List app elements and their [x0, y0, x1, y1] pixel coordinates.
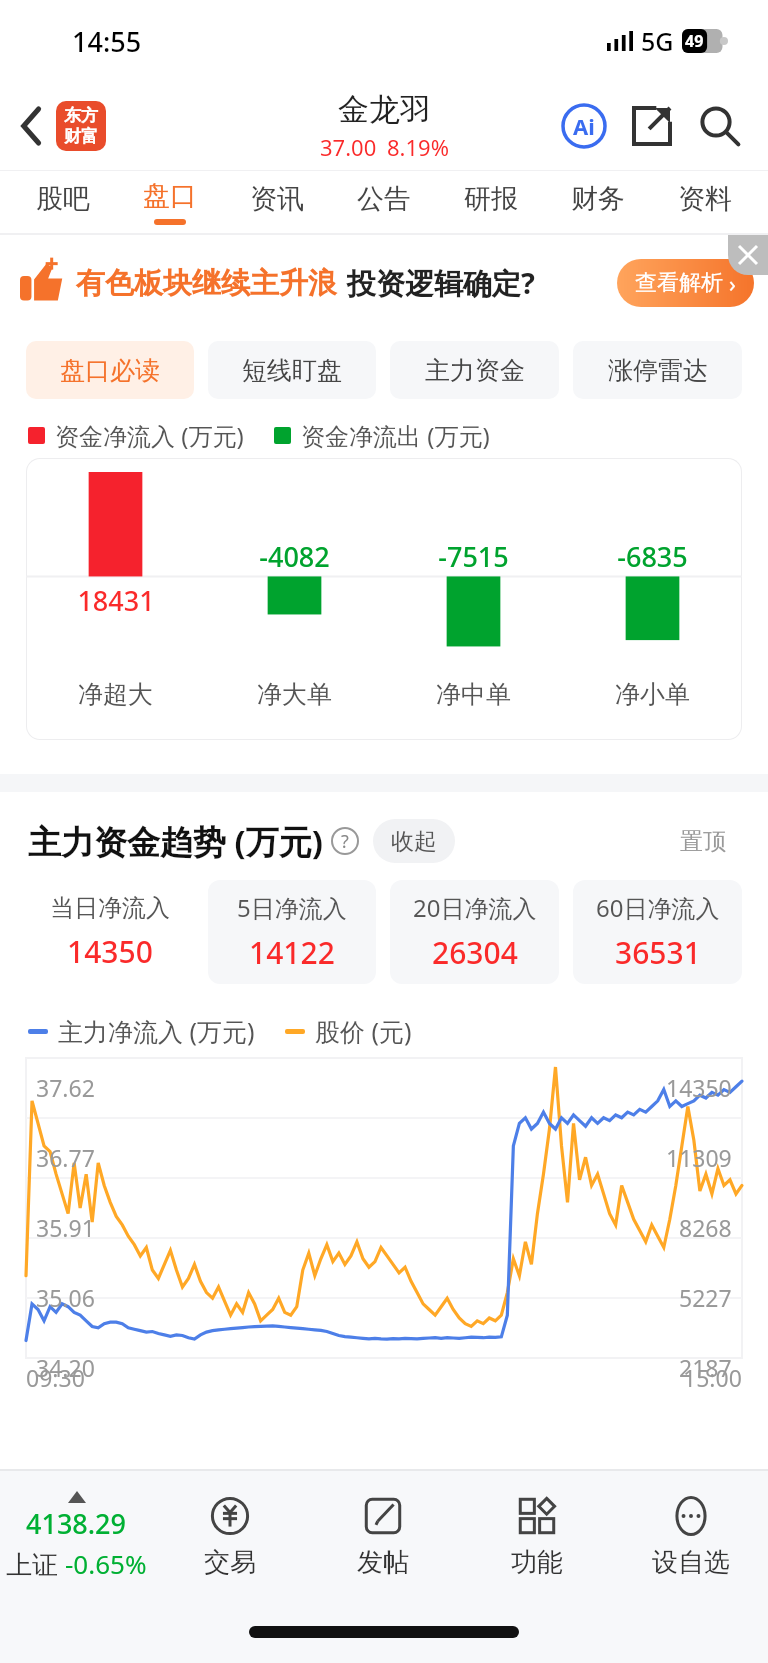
button[interactable]: 收起 — [391, 819, 437, 863]
staticText: 投资逻辑确定? — [347, 263, 535, 303]
staticText: -6835 — [617, 538, 688, 575]
staticText: 公告 — [357, 182, 411, 216]
staticText: 35.91 — [36, 1212, 95, 1243]
staticText: 财富 — [64, 126, 98, 147]
button[interactable]: 发帖 — [306, 1471, 460, 1601]
button[interactable]: 主力资金 — [390, 341, 559, 399]
staticText: 14350 — [666, 1072, 732, 1103]
staticText: 收起 — [391, 827, 437, 856]
staticText: 60日净流入 — [596, 891, 720, 924]
button[interactable]: 盘口必读 — [26, 341, 194, 399]
staticText: 资料 — [678, 182, 732, 216]
staticText: 上证 — [6, 1546, 65, 1582]
button[interactable]: 研报 — [437, 171, 544, 233]
staticText: › — [729, 268, 736, 298]
staticText: 26304 — [432, 932, 518, 973]
button[interactable]: 功能 — [460, 1471, 614, 1601]
button[interactable]: Search — [692, 98, 748, 154]
staticText: 资金净流入 (万元) — [55, 419, 244, 452]
staticText: 35.06 — [36, 1282, 95, 1313]
button[interactable]: 涨停雷达 — [573, 341, 742, 399]
button[interactable]: 东方 — [56, 101, 106, 151]
staticText: 当日净流入 — [50, 893, 170, 923]
staticText: 14122 — [249, 932, 335, 973]
staticText: 11309 — [666, 1142, 732, 1173]
staticText: 14:55 — [72, 23, 142, 60]
button[interactable]: 公告 — [330, 171, 437, 233]
staticText: 2187 — [679, 1352, 732, 1383]
button[interactable]: 盘口 — [116, 171, 223, 233]
staticText: 盘口 — [143, 179, 197, 213]
staticText: 15:00 — [683, 1362, 742, 1393]
staticText: Ai — [573, 111, 595, 141]
staticText: 净大单 — [257, 679, 332, 710]
button[interactable]: Share — [624, 98, 680, 154]
staticText: 主力净流入 (万元) — [58, 1014, 255, 1048]
button[interactable]: 查看解析 — [635, 259, 736, 307]
button[interactable]: 设自选 — [614, 1471, 768, 1601]
staticText: 5日净流入 — [237, 891, 347, 924]
button[interactable]: 交易 — [153, 1471, 306, 1601]
staticText: 09:30 — [26, 1362, 85, 1393]
staticText: 资讯 — [250, 182, 304, 216]
button[interactable]: 股吧 — [10, 171, 116, 233]
staticText: 置顶 — [680, 827, 726, 856]
staticText: 研报 — [464, 182, 518, 216]
staticText: 涨停雷达 — [608, 355, 708, 386]
staticText: 查看解析 — [635, 269, 723, 297]
staticText: 净小单 — [615, 679, 690, 710]
staticText: 资金净流出 (万元) — [301, 419, 490, 452]
staticText: 股价 (元) — [315, 1014, 412, 1048]
staticText: -4082 — [259, 538, 330, 575]
staticText: 4138.29 — [26, 1505, 127, 1542]
staticText: 有色板块继续主升浪 — [76, 265, 337, 302]
staticText: 发帖 — [357, 1546, 409, 1579]
staticText: 盘口必读 — [60, 355, 160, 386]
staticText: 东方 — [64, 105, 98, 126]
staticText: 净中单 — [436, 679, 511, 710]
staticText: 主力资金 — [425, 355, 525, 386]
button[interactable]: AI — [556, 98, 612, 154]
staticText: 交易 — [204, 1546, 256, 1579]
staticText: 功能 — [511, 1546, 563, 1579]
staticText: 37.00 — [320, 132, 377, 162]
staticText: 金龙羽 — [338, 90, 431, 129]
button[interactable]: 20日净流入 — [390, 880, 559, 984]
staticText: 主力资金趋势 (万元) — [28, 819, 323, 864]
button[interactable]: 4138.29 — [0, 1471, 153, 1601]
button[interactable]: 置顶 — [680, 818, 726, 864]
staticText: 49 — [685, 30, 704, 52]
staticText: 34.20 — [36, 1352, 95, 1383]
staticText: 5G — [641, 24, 674, 58]
staticText: 短线盯盘 — [242, 355, 342, 386]
button[interactable]: 资讯 — [223, 171, 330, 233]
staticText: 20日净流入 — [413, 891, 537, 924]
staticText: 净超大 — [78, 679, 153, 710]
staticText: 财务 — [571, 182, 625, 216]
button[interactable]: Back — [8, 102, 56, 150]
staticText: -7515 — [438, 538, 509, 575]
button[interactable]: 有色板块继续主升浪 — [20, 235, 754, 331]
staticText: 5227 — [679, 1282, 732, 1313]
staticText: 37.62 — [36, 1072, 95, 1103]
button[interactable]: Help — [331, 827, 359, 855]
button[interactable]: 短线盯盘 — [208, 341, 376, 399]
staticText: 36531 — [615, 932, 701, 973]
button[interactable]: 60日净流入 — [573, 880, 742, 984]
button[interactable]: Close — [728, 235, 768, 275]
staticText: 8.19% — [387, 132, 449, 162]
staticText: ? — [341, 829, 349, 854]
staticText: 8268 — [679, 1212, 732, 1243]
staticText: 18431 — [77, 582, 155, 619]
button[interactable]: 当日净流入 — [26, 880, 194, 984]
staticText: 股吧 — [36, 182, 90, 216]
button[interactable]: 资料 — [651, 171, 758, 233]
staticText: 设自选 — [652, 1546, 730, 1579]
button[interactable]: 财务 — [544, 171, 651, 233]
staticText: 36.77 — [36, 1142, 95, 1173]
button[interactable]: 5日净流入 — [208, 880, 376, 984]
staticText: 14350 — [67, 931, 153, 972]
staticText: -0.65% — [65, 1546, 147, 1581]
